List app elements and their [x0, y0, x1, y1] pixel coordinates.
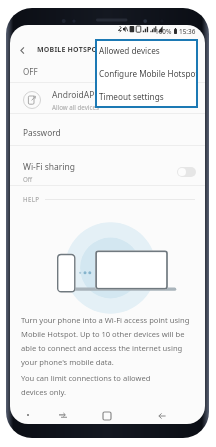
- button[interactable]: Recent apps: [54, 406, 72, 424]
- button[interactable]: Timeout settings: [95, 85, 198, 108]
- staticText: You can limit connections to allowed dev…: [21, 373, 151, 397]
- button[interactable]: Navigate up: [10, 38, 34, 62]
- staticText: OFF: [23, 66, 38, 76]
- button[interactable]: AndroidAP: [10, 85, 205, 115]
- staticText: AndroidAP: [52, 89, 95, 101]
- staticText: Allowed devices: [99, 45, 160, 56]
- staticText: 100%: [155, 27, 172, 36]
- staticText: HELP: [23, 195, 40, 203]
- staticText: Off: [23, 175, 33, 183]
- staticText: Timeout settings: [99, 91, 164, 102]
- staticText: Password: [23, 127, 61, 138]
- button[interactable]: Allowed devices: [95, 39, 198, 62]
- button[interactable]: Home: [98, 406, 116, 424]
- button[interactable]: Configure Mobile Hotspot: [95, 62, 198, 85]
- staticText: 15:36: [179, 27, 196, 36]
- staticText: Wi-Fi sharing: [23, 161, 75, 173]
- staticText: Allow all devices: [52, 103, 99, 111]
- staticText: MOBILE HOTSPOT: [37, 45, 102, 55]
- staticText: Turn your phone into a Wi-Fi access poin…: [21, 315, 194, 367]
- button[interactable]: Back: [153, 406, 171, 424]
- button[interactable]: Password: [10, 119, 205, 145]
- button[interactable]: Wi-Fi sharing: [10, 156, 205, 188]
- staticText: Configure Mobile Hotspot: [99, 68, 198, 79]
